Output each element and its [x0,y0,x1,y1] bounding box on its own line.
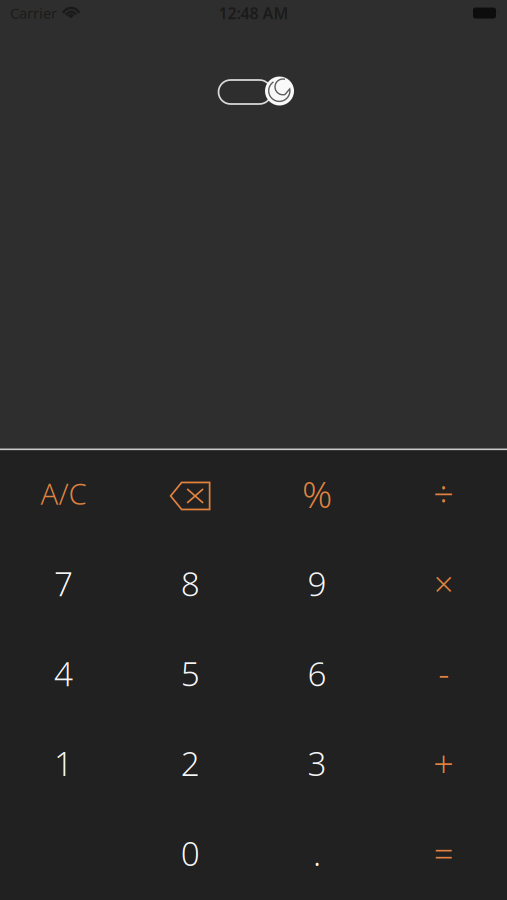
staticText: Carrier [10,3,57,23]
staticText: 0 [181,831,200,875]
button[interactable]: + [380,720,507,810]
staticText: - [438,650,449,696]
button[interactable]: 4 [0,630,127,720]
staticText: 8 [181,561,200,605]
button[interactable]: 5 [127,630,254,720]
staticText: = [434,830,454,876]
staticText: 7 [54,561,73,605]
staticText: % [302,469,332,518]
button[interactable]: . [253,810,380,900]
staticText: 5 [181,651,200,695]
staticText: 1 [54,741,73,785]
button[interactable]: A/C [0,450,127,540]
staticText: 2 [181,741,200,785]
staticText: × [434,560,454,606]
button[interactable]: 2 [127,720,254,810]
button[interactable]: × [380,540,507,630]
button[interactable]: 1 [0,720,127,810]
staticText: A/C [40,474,86,513]
button[interactable]: 6 [253,630,380,720]
button[interactable]: = [380,810,507,900]
staticText: 12:48 AM [218,2,288,24]
button[interactable]: ÷ [380,450,507,540]
button[interactable]: 8 [127,540,254,630]
staticText: ÷ [433,469,454,517]
button[interactable]: 3 [253,720,380,810]
staticText: 3 [307,741,326,785]
staticText: 9 [307,561,326,605]
staticText: + [433,739,454,787]
button[interactable]: % [253,450,380,540]
staticText: . [313,831,321,875]
button[interactable]: 0 [127,810,254,900]
button[interactable]: Delete [127,450,254,540]
button[interactable]: 7 [0,540,127,630]
button[interactable]: 9 [253,540,380,630]
staticText: 6 [307,651,326,695]
staticText: 4 [54,651,73,695]
button[interactable]: Toggle dark mode [212,74,294,108]
button[interactable]: - [380,630,507,720]
